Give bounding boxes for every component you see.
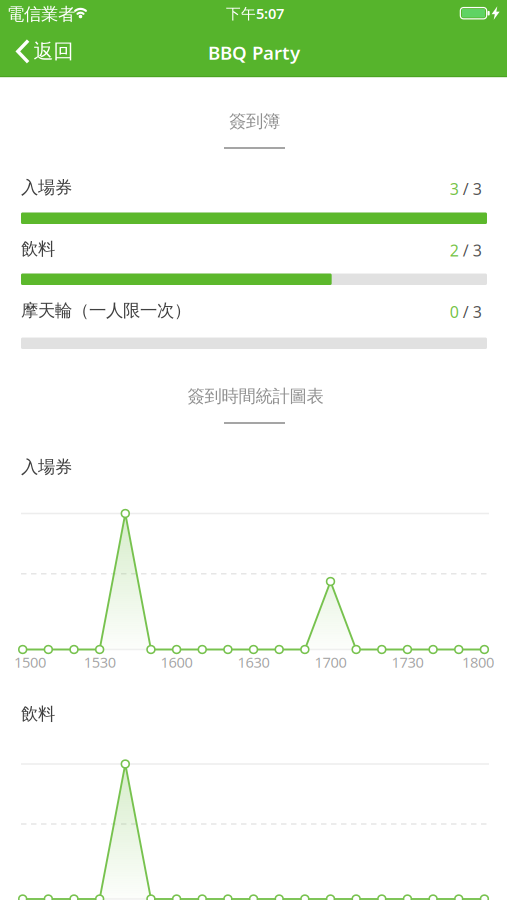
button[interactable]: 返回 bbox=[0, 28, 90, 77]
staticText: 1600 bbox=[161, 652, 193, 672]
staticText: / 3 bbox=[459, 178, 482, 199]
staticText: 1730 bbox=[391, 652, 423, 672]
staticText: 1530 bbox=[84, 652, 116, 672]
staticText: 0 bbox=[450, 301, 459, 322]
staticText: 返回 bbox=[33, 39, 73, 64]
staticText: / 3 bbox=[459, 301, 482, 322]
staticText: 1630 bbox=[237, 652, 269, 672]
staticText: 飲料 bbox=[21, 238, 55, 260]
staticText: 1800 bbox=[462, 652, 494, 672]
staticText: 下午5:07 bbox=[226, 3, 284, 23]
staticText: 摩天輪（一人限一次） bbox=[21, 300, 191, 321]
staticText: 電信業者 bbox=[7, 4, 75, 25]
staticText: BBQ Party bbox=[208, 40, 300, 65]
staticText: 入場券 bbox=[21, 456, 72, 478]
staticText: 1500 bbox=[14, 652, 46, 672]
staticText: / 3 bbox=[459, 240, 482, 261]
staticText: 簽到簿 bbox=[229, 111, 280, 132]
staticText: 入場券 bbox=[21, 177, 72, 198]
staticText: 1700 bbox=[314, 652, 346, 672]
staticText: 飲料 bbox=[21, 703, 55, 725]
staticText: 簽到時間統計圖表 bbox=[187, 386, 323, 407]
staticText: 2 bbox=[450, 240, 459, 261]
staticText: 3 bbox=[450, 178, 459, 199]
